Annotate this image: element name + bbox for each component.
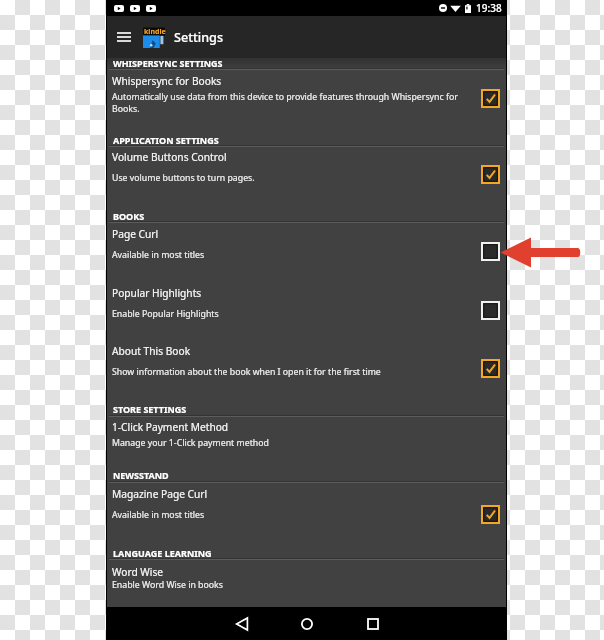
button[interactable]: Toggle Volume Buttons Control <box>481 165 500 184</box>
button[interactable] <box>106 222 507 281</box>
button[interactable] <box>106 559 507 607</box>
staticText: 1-Click Payment Method <box>112 420 229 434</box>
button[interactable] <box>106 417 507 469</box>
button[interactable]: Toggle Popular Highlights <box>481 301 500 320</box>
staticText: Page Curl <box>112 227 159 241</box>
button[interactable]: Open navigation drawer <box>112 23 136 51</box>
button[interactable]: Toggle Magazine Page Curl <box>481 505 500 524</box>
staticText: kindle <box>144 27 166 37</box>
button[interactable] <box>106 281 507 340</box>
button[interactable] <box>106 482 507 545</box>
staticText: Enable Word Wise in books <box>112 579 467 591</box>
staticText: APPLICATION SETTINGS <box>113 134 219 146</box>
button[interactable]: Recents <box>362 613 384 635</box>
staticText: NEWSSTAND <box>113 469 169 481</box>
staticText: Available in most titles <box>112 509 467 521</box>
staticText: Volume Buttons Control <box>112 150 227 164</box>
staticText: Word Wise <box>112 565 164 579</box>
staticText: Whispersync for Books <box>112 74 222 88</box>
button[interactable]: Toggle Page Curl <box>481 242 500 261</box>
staticText: Automatically use data from this device … <box>112 91 467 115</box>
staticText: Use volume buttons to turn pages. <box>112 172 467 184</box>
staticText: BOOKS <box>113 210 145 222</box>
staticText: WHISPERSYNC SETTINGS <box>113 57 223 69</box>
staticText: Enable Popular Highlights <box>112 308 467 320</box>
staticText: Popular Highlights <box>112 286 202 300</box>
staticText: About This Book <box>112 344 191 358</box>
staticText: Show information about the book when I o… <box>112 366 467 378</box>
button[interactable] <box>106 69 507 127</box>
button[interactable]: Home <box>296 613 318 635</box>
staticText: Available in most titles <box>112 249 467 261</box>
staticText: Settings <box>174 29 224 46</box>
staticText: LANGUAGE LEARNING <box>113 547 212 559</box>
staticText: Manage your 1-Click payment method <box>112 437 467 449</box>
staticText: STORE SETTINGS <box>113 403 187 415</box>
staticText: 19:38 <box>476 1 502 15</box>
button[interactable]: Toggle About This Book <box>481 359 500 378</box>
button[interactable]: Back <box>231 613 253 635</box>
button[interactable]: Toggle Whispersync for Books <box>481 89 500 108</box>
button[interactable] <box>106 339 507 398</box>
button[interactable] <box>106 147 507 202</box>
staticText: Magazine Page Curl <box>112 487 208 501</box>
